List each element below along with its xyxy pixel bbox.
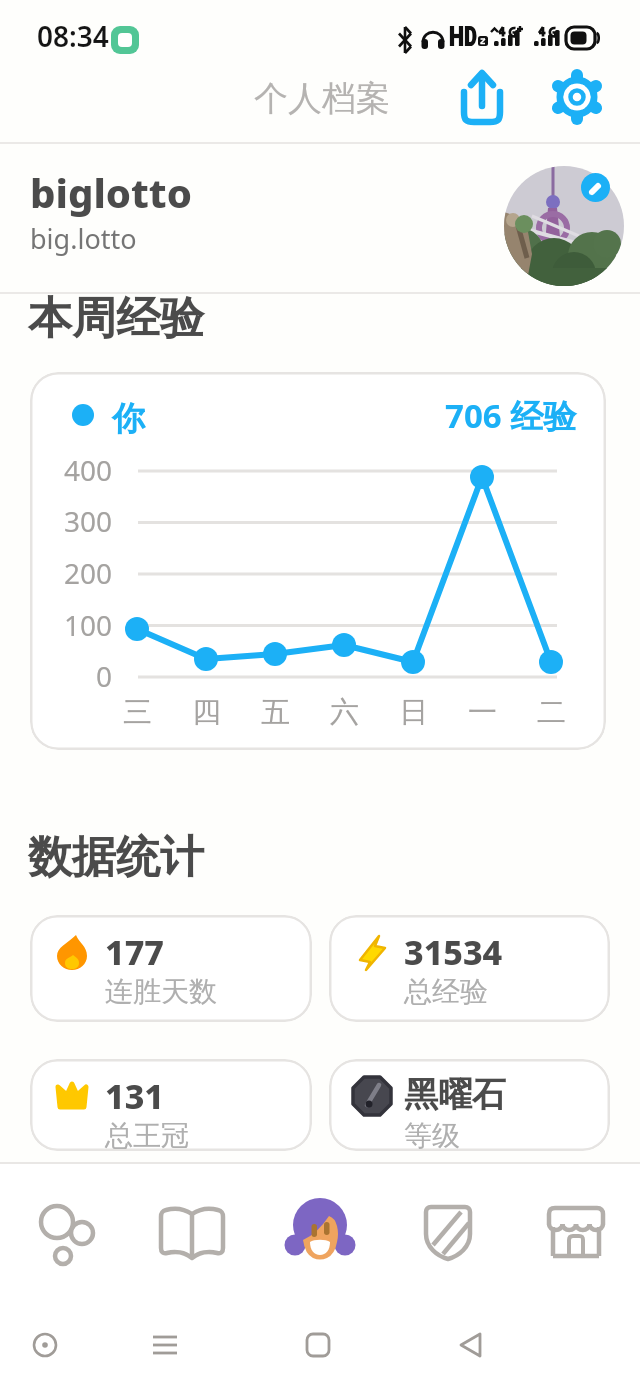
staticText: 400 (64, 451, 113, 489)
button[interactable]: 31534 (329, 915, 610, 1022)
staticText: 连胜天数 (105, 974, 217, 1009)
button[interactable] (454, 68, 510, 124)
staticText: 二 (537, 694, 566, 731)
button[interactable] (9, 1172, 119, 1298)
staticText: 等级 (404, 1118, 460, 1151)
staticText: 本周经验 (28, 291, 204, 346)
button[interactable] (393, 1172, 503, 1298)
button[interactable] (135, 1315, 195, 1375)
button[interactable] (504, 166, 624, 286)
button[interactable] (137, 1172, 247, 1298)
button[interactable] (288, 1315, 348, 1375)
staticText: 黑曜石 (404, 1073, 506, 1116)
button[interactable]: 黑曜石 (329, 1059, 610, 1151)
button[interactable]: 131 (30, 1059, 312, 1151)
staticText: 五 (261, 694, 290, 731)
staticText: biglotto (30, 165, 192, 219)
staticText: 706 经验 (445, 393, 577, 438)
staticText: 300 (64, 502, 113, 540)
staticText: 日 (399, 694, 428, 731)
staticText: 200 (64, 554, 113, 592)
staticText: 四 (192, 694, 221, 731)
button[interactable] (265, 1172, 375, 1298)
staticText: 总王冠 (105, 1118, 189, 1151)
staticText: 131 (105, 1073, 164, 1119)
staticText: 你 (112, 398, 145, 440)
button[interactable] (548, 68, 606, 126)
staticText: 总经验 (404, 974, 488, 1009)
button[interactable] (581, 173, 610, 202)
staticText: 数据统计 (28, 830, 204, 885)
button[interactable] (521, 1172, 631, 1298)
button[interactable] (440, 1315, 500, 1375)
staticText: big.lotto (30, 220, 137, 257)
staticText: 三 (123, 694, 152, 731)
button[interactable] (15, 1315, 75, 1375)
staticText: 0 (96, 657, 113, 695)
staticText: 个人档案 (254, 77, 390, 120)
staticText: 177 (105, 929, 164, 975)
button[interactable]: 177 (30, 915, 312, 1022)
staticText: 六 (330, 694, 359, 731)
staticText: 100 (64, 606, 113, 644)
staticText: 一 (468, 694, 497, 731)
staticText: 31534 (404, 929, 503, 975)
staticText: 08:34 (37, 17, 109, 55)
